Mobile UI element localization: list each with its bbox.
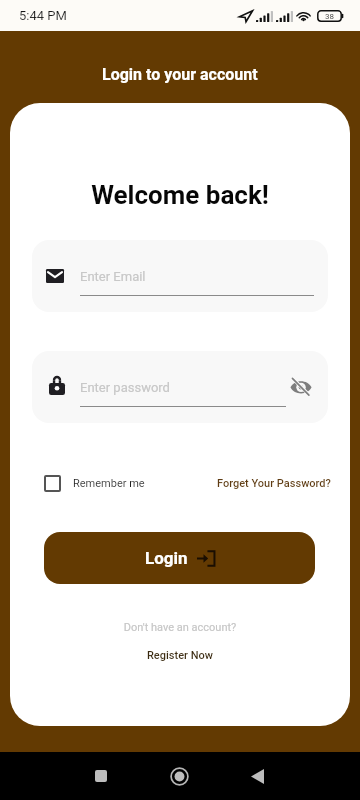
button[interactable]: Recent apps — [86, 761, 116, 791]
staticText: Enter Email — [80, 269, 146, 284]
button[interactable]: Login — [44, 532, 315, 584]
staticText: Don't have an account? — [10, 621, 350, 634]
staticText: 5:44 PM — [19, 8, 67, 23]
button[interactable]: Back — [242, 761, 272, 791]
button[interactable]: Enter Email — [32, 240, 328, 312]
button[interactable]: Enter password — [32, 351, 328, 423]
staticText: Login — [145, 548, 188, 568]
staticText: 38 — [325, 12, 334, 21]
staticText: Welcome back! — [10, 180, 350, 210]
button[interactable]: Remember me — [44, 472, 145, 495]
staticText: Remember me — [73, 477, 145, 490]
button[interactable]: Show password — [288, 374, 314, 400]
button[interactable]: Home — [164, 761, 194, 791]
staticText: Enter password — [80, 380, 170, 395]
button[interactable]: Register Now — [144, 646, 216, 665]
staticText: Login to your account — [102, 65, 258, 84]
button[interactable]: Forget Your Password? — [217, 474, 331, 493]
